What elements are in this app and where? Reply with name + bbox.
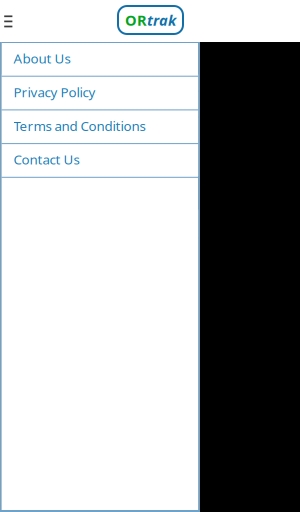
button[interactable]: ORtrak home [118,6,183,34]
button[interactable]: Terms and Conditions [1,110,198,144]
staticText: trak [147,10,176,30]
staticText: Contact Us [13,151,79,168]
button[interactable]: Open menu [0,4,26,38]
button[interactable]: Privacy Policy [1,77,198,110]
button[interactable]: About Us [1,43,198,77]
staticText: Privacy Policy [13,83,95,101]
staticText: About Us [13,49,70,67]
button[interactable]: Contact Us [1,144,198,178]
staticText: OR [125,10,147,30]
staticText: Terms and Conditions [13,117,145,135]
